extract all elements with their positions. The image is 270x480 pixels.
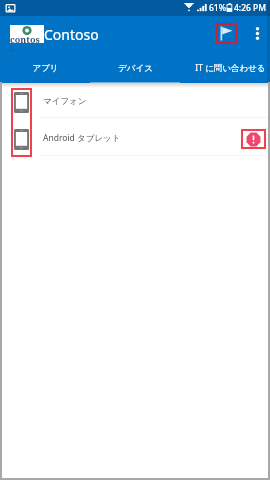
- staticText: contoso: [10, 33, 44, 51]
- button[interactable]: アプリ: [0, 55, 90, 83]
- button[interactable]: IT に問い合わせる: [180, 55, 270, 83]
- button[interactable]: デバイス: [90, 55, 180, 83]
- staticText: 4:26 PM: [234, 2, 267, 14]
- staticText: Contoso: [44, 25, 99, 44]
- button[interactable]: マイフォン: [0, 83, 270, 118]
- staticText: アプリ: [32, 63, 59, 74]
- button[interactable]: More options: [248, 23, 266, 44]
- staticText: マイフォン: [43, 96, 87, 107]
- staticText: デバイス: [118, 63, 153, 74]
- button[interactable]: Flag: [216, 23, 237, 44]
- staticText: 61%: [209, 2, 226, 14]
- staticText: Android タブレット: [43, 132, 121, 144]
- staticText: IT に問い合わせる: [195, 62, 266, 74]
- button[interactable]: Android タブレット: [0, 118, 270, 156]
